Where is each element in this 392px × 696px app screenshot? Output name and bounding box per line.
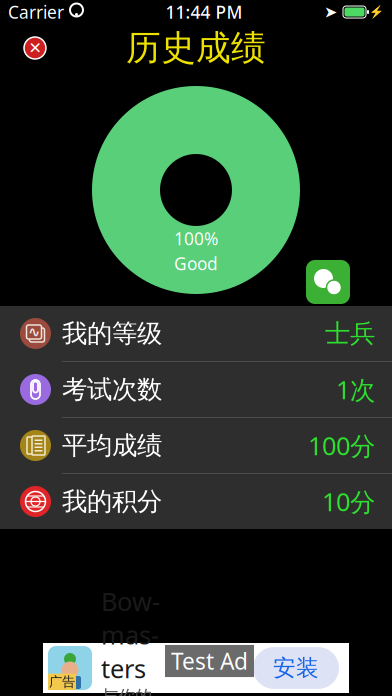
staticText: 与你的英雄作战! xyxy=(101,686,152,696)
staticText: 士兵 xyxy=(325,318,375,349)
staticText: 安装 xyxy=(273,654,319,682)
staticText: 10分 xyxy=(322,485,375,518)
button[interactable]: 平均成绩 xyxy=(0,418,392,474)
staticText: 100分 xyxy=(308,429,375,462)
button[interactable]: 我的积分 xyxy=(0,474,392,529)
staticText: 我的积分 xyxy=(62,486,162,517)
staticText: 11:44 PM xyxy=(165,0,242,23)
button[interactable]: Bowmasters advertisement, install xyxy=(43,643,349,693)
staticText: ⚡ xyxy=(369,5,384,19)
staticText: 平均成绩 xyxy=(62,430,162,461)
staticText: ∿ xyxy=(28,324,40,340)
staticText: 广告 xyxy=(49,674,75,690)
staticText: 1次 xyxy=(336,373,375,406)
button[interactable]: ∿ xyxy=(0,306,392,362)
button[interactable]: Close xyxy=(13,26,57,70)
button[interactable]: Share to WeChat xyxy=(306,260,350,304)
staticText: 考试次数 xyxy=(62,374,162,405)
staticText: 100% xyxy=(174,227,218,250)
staticText: Test Ad xyxy=(171,646,248,676)
staticText: 我的等级 xyxy=(62,318,162,349)
button[interactable]: 考试次数 xyxy=(0,362,392,418)
staticText: ➤ xyxy=(324,3,337,21)
staticText: 历史成绩 xyxy=(126,27,266,69)
staticText: Carrier xyxy=(8,0,64,23)
staticText: ✕ xyxy=(28,39,41,57)
staticText: Good xyxy=(174,252,218,275)
staticText: Bowmasters xyxy=(101,584,160,685)
